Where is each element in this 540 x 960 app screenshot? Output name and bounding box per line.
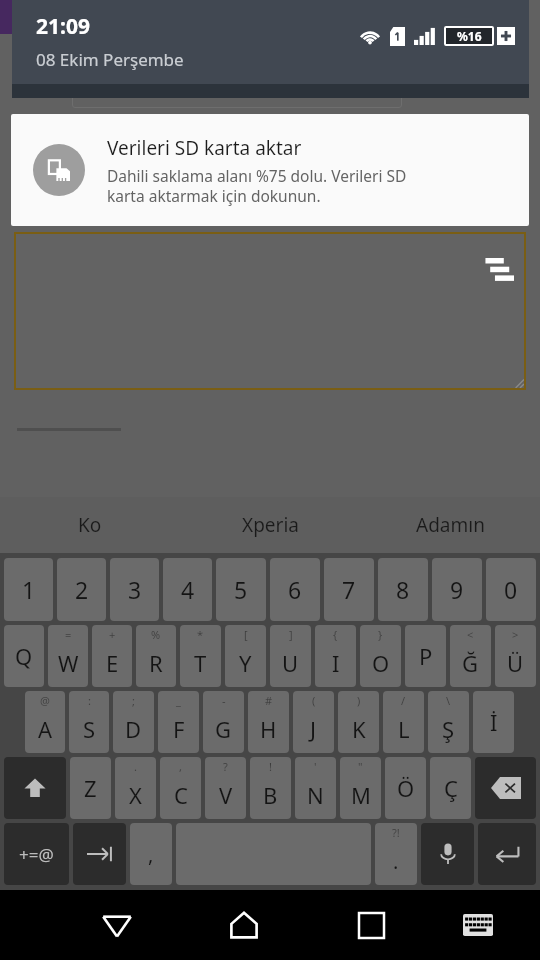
button[interactable]: 9 [432, 558, 482, 621]
staticText: Adamın [416, 512, 485, 538]
staticText: 2 [75, 574, 89, 605]
button[interactable]: 1 [4, 558, 53, 621]
button[interactable]: ?! [375, 823, 417, 885]
button[interactable]: / [383, 691, 424, 753]
button[interactable]: 2 [57, 558, 106, 621]
staticText: } [378, 627, 383, 642]
other: Tab [87, 845, 113, 863]
button[interactable]: Ç [430, 757, 471, 819]
button[interactable]: P [405, 625, 446, 687]
staticText: / [401, 693, 406, 708]
other: Enter [494, 844, 520, 864]
staticText: Ö [397, 773, 415, 803]
button[interactable]: Shift [4, 757, 66, 819]
other: Shift [23, 776, 47, 800]
staticText: % [151, 627, 161, 642]
button[interactable]: 0 [486, 558, 536, 621]
button[interactable]: 6 [270, 558, 320, 621]
button[interactable]: : [69, 691, 109, 753]
button[interactable]: - [203, 691, 244, 753]
staticText: ( [312, 693, 316, 708]
staticText: N [307, 780, 324, 810]
button[interactable]: * [180, 625, 221, 687]
button[interactable]: 8 [378, 558, 428, 621]
button[interactable]: ? [205, 757, 246, 819]
staticText: Z [84, 773, 97, 803]
staticText: I [332, 648, 340, 678]
staticText: P [419, 641, 433, 671]
button[interactable]: # [248, 691, 289, 753]
staticText: @ [40, 693, 50, 708]
staticText: K [352, 714, 366, 744]
button[interactable]: , [130, 823, 172, 885]
button[interactable]: ( [293, 691, 334, 753]
staticText: 6 [288, 574, 302, 605]
button[interactable]: ! [250, 757, 291, 819]
staticText: L [398, 714, 410, 744]
button[interactable]: Hide keyboard [437, 890, 519, 960]
staticText: +=@ [19, 843, 54, 866]
button[interactable]: Align right [14, 232, 526, 390]
button[interactable]: +=@ [4, 823, 69, 885]
button[interactable]: " [340, 757, 381, 819]
staticText: F [173, 714, 185, 744]
button[interactable]: [ [225, 625, 266, 687]
staticText: C [174, 780, 188, 810]
staticText: 5 [234, 574, 248, 605]
staticText: T [194, 648, 207, 678]
button[interactable]: ] [270, 625, 311, 687]
button[interactable]: Adamın [360, 497, 540, 553]
staticText: D [125, 714, 142, 744]
button[interactable]: Ko [0, 497, 180, 553]
staticText: J [310, 714, 317, 744]
button[interactable]: Enter [478, 823, 536, 885]
staticText: ) [357, 693, 361, 708]
other: Backspace [491, 777, 521, 799]
button[interactable]: 4 [163, 558, 212, 621]
button[interactable]: \ [428, 691, 469, 753]
button[interactable]: Home [203, 890, 285, 960]
button[interactable]: 7 [324, 558, 374, 621]
button[interactable]: Q [4, 625, 44, 687]
button[interactable]: Ö [385, 757, 426, 819]
button[interactable]: Xperia [180, 497, 360, 553]
button[interactable]: 5 [216, 558, 266, 621]
button[interactable]: > [495, 625, 536, 687]
button[interactable]: Backspace [475, 757, 536, 819]
button[interactable]: Back [75, 890, 158, 960]
button[interactable]: Voice input [421, 823, 474, 885]
staticText: ? [223, 759, 228, 774]
button[interactable]: Recent apps [330, 890, 412, 960]
button[interactable]: Tab [73, 823, 126, 885]
staticText: " [358, 759, 363, 774]
staticText: R [149, 648, 163, 678]
button[interactable]: @ [25, 691, 65, 753]
button[interactable]: < [450, 625, 491, 687]
staticText: * [197, 627, 204, 642]
button[interactable]: , [160, 757, 201, 819]
button[interactable]: . [115, 757, 156, 819]
staticText: ' [314, 759, 317, 774]
button[interactable]: } [360, 625, 401, 687]
button[interactable]: = [48, 625, 88, 687]
button[interactable]: ; [113, 691, 154, 753]
staticText: + [109, 627, 116, 642]
button[interactable]: { [315, 625, 356, 687]
button[interactable]: ' [295, 757, 336, 819]
staticText: S [83, 714, 96, 744]
button[interactable]: % [136, 625, 176, 687]
button[interactable]: Z [70, 757, 111, 819]
staticText: [ [244, 627, 248, 642]
button[interactable]: ) [338, 691, 379, 753]
button[interactable]: 3 [110, 558, 159, 621]
button[interactable]: _ [158, 691, 199, 753]
staticText: > [512, 627, 519, 642]
staticText: _ [176, 693, 181, 708]
staticText: : [88, 693, 91, 708]
staticText: < [467, 627, 474, 642]
button[interactable]: İ [473, 691, 514, 753]
button[interactable]: Move data to SD card [11, 114, 529, 226]
button[interactable]: + [92, 625, 132, 687]
staticText: %16 [457, 28, 482, 44]
